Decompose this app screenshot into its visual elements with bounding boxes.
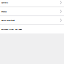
button[interactable]: Discover New API apps [0, 25, 64, 33]
button[interactable]: Photos [0, 7, 64, 16]
staticText: Voice Assistant [1, 19, 15, 22]
staticText: Photos [1, 10, 7, 13]
staticText: Camera [1, 1, 8, 4]
staticText: Discover New API apps [1, 28, 22, 30]
button[interactable]: Camera [0, 0, 64, 7]
button[interactable]: Voice Assistant [0, 16, 64, 25]
